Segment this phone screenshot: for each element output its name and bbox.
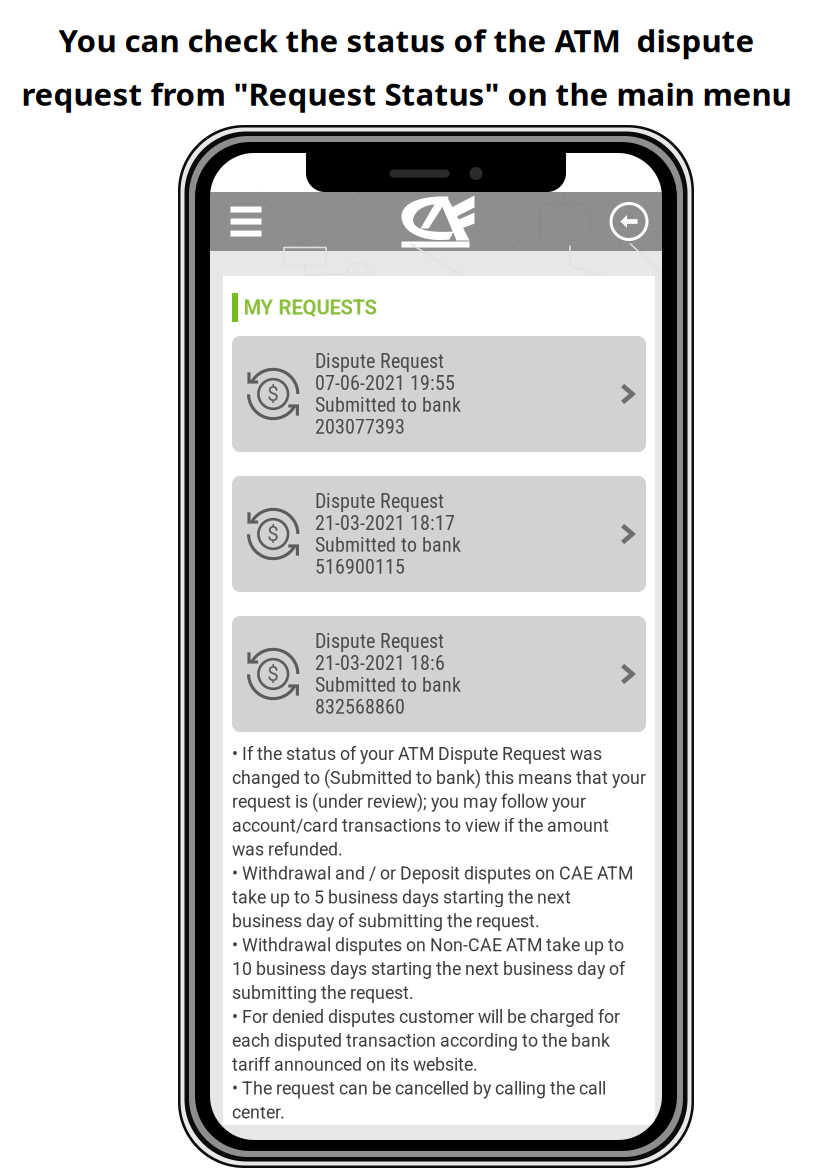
button[interactable]: $ [232,616,646,732]
staticText: center. [232,1102,285,1123]
button[interactable]: Back [602,194,656,248]
button[interactable]: Menu [218,193,274,249]
staticText: 21-03-2021 18:6 [315,651,445,675]
staticText: 10 business days starting the next busin… [232,959,625,979]
staticText: each disputed transaction according to t… [232,1030,610,1051]
staticText: • Withdrawal and / or Deposit disputes o… [232,863,633,884]
staticText: tariff announced on its website. [232,1054,478,1075]
staticText: • For denied disputes customer will be c… [232,1006,620,1027]
staticText: Dispute Request [315,349,444,373]
staticText: Dispute Request [315,629,444,653]
staticText: request from "Request Status" on the mai… [21,72,791,115]
staticText: Submitted to bank [315,533,461,557]
staticText: • If the status of your ATM Dispute Requ… [232,744,602,764]
staticText: 21-03-2021 18:17 [315,511,455,535]
staticText: account/card transactions to view if the… [232,815,609,836]
staticText: $ [267,382,279,406]
staticText: Submitted to bank [315,393,461,417]
staticText: request is (under review); you may follo… [232,791,586,812]
staticText: • Withdrawal disputes on Non-CAE ATM tak… [232,935,624,956]
staticText: submitting the request. [232,983,414,1003]
staticText: Submitted to bank [315,673,461,697]
staticText: 07-06-2021 19:55 [315,371,455,395]
staticText: You can check the status of the ATM disp… [58,19,754,61]
staticText: • The request can be cancelled by callin… [232,1078,606,1099]
staticText: was refunded. [232,839,343,860]
staticText: take up to 5 business days starting the … [232,887,571,908]
staticText: 203077393 [315,415,405,438]
button[interactable]: $ [232,336,646,452]
staticText: Dispute Request [315,489,444,513]
staticText: MY REQUESTS [243,296,376,319]
staticText: 516900115 [315,555,405,578]
staticText: changed to (Submitted to bank) this mean… [232,767,646,788]
staticText: $ [267,662,279,686]
staticText: $ [267,522,279,546]
staticText: 832568860 [315,695,405,718]
staticText: business day of submitting the request. [232,911,540,932]
button[interactable]: $ [232,476,646,592]
